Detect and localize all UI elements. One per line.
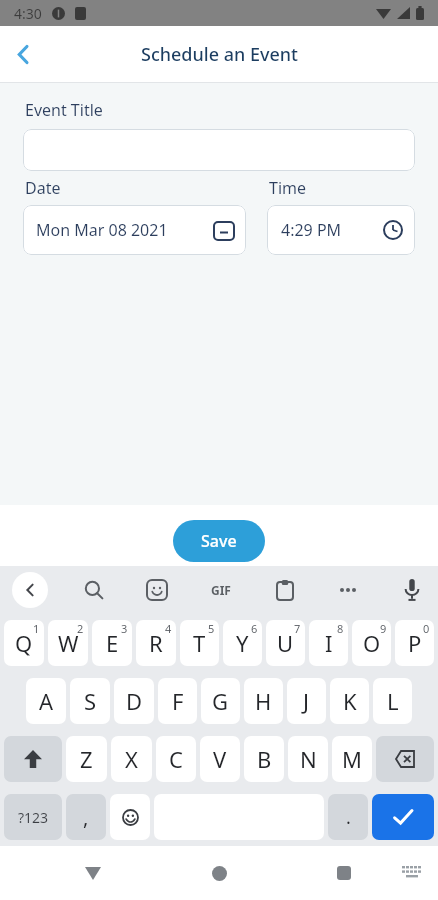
staticText: U [277,628,294,658]
staticText: W [58,628,79,658]
button[interactable]: E [92,620,132,666]
button[interactable]: Y [223,620,262,666]
staticText: Z [80,744,93,774]
button[interactable]: L [373,678,412,724]
staticText: 5 [208,621,215,636]
button[interactable]: K [330,678,369,724]
button[interactable] [4,736,62,782]
staticText: L [387,686,399,716]
staticText: A [39,686,54,716]
button[interactable]: X [111,736,152,782]
button[interactable] [330,572,366,608]
button[interactable]: H [244,678,283,724]
button[interactable] [12,572,48,608]
button[interactable]: V [200,736,240,782]
button[interactable]: A [26,678,66,724]
staticText: J [303,686,310,716]
button[interactable] [110,794,150,840]
staticText: I [325,628,333,658]
staticText: Q [15,628,33,658]
button[interactable] [376,736,434,782]
staticText: Schedule an Event [141,42,298,67]
button[interactable]: GIF [203,572,239,608]
button[interactable]: N [288,736,328,782]
staticText: GIF [211,582,231,598]
staticText: B [257,744,272,774]
staticText: 4:29 PM [281,219,342,241]
button[interactable] [5,36,41,72]
staticText: Y [236,628,249,658]
staticText: 0 [423,621,430,636]
staticText: V [213,744,227,774]
button[interactable]: G [201,678,240,724]
staticText: M [342,744,362,774]
button[interactable]: R [136,620,176,666]
staticText: 8 [337,621,344,636]
staticText: G [212,686,229,716]
button[interactable]: P [395,620,434,666]
button[interactable]: O [352,620,391,666]
staticText: 6 [251,621,258,636]
staticText: N [300,744,317,774]
staticText: 3 [121,621,128,636]
button[interactable] [267,572,303,608]
button[interactable]: , [66,794,106,840]
button[interactable] [372,794,434,840]
button[interactable] [73,853,113,893]
button[interactable]: U [266,620,305,666]
staticText: Save [201,530,237,552]
button[interactable] [394,572,430,608]
staticText: 1 [33,621,40,636]
staticText: O [363,628,381,658]
button[interactable]: Mon Mar 08 2021 [23,205,246,255]
button[interactable]: I [309,620,348,666]
button[interactable] [23,129,415,171]
staticText: , [83,804,89,831]
staticText: K [343,686,357,716]
staticText: D [126,686,143,716]
button[interactable] [139,572,175,608]
button[interactable] [398,859,426,887]
staticText: P [408,628,422,658]
staticText: Mon Mar 08 2021 [36,219,168,241]
staticText: X [125,744,138,774]
staticText: C [169,744,183,774]
staticText: S [84,686,97,716]
button[interactable]: Q [4,620,44,666]
staticText: 2 [77,621,84,636]
button[interactable]: S [70,678,110,724]
staticText: H [255,686,272,716]
staticText: Date [25,177,61,199]
button[interactable] [199,853,239,893]
staticText: 9 [380,621,387,636]
button[interactable]: F [158,678,197,724]
button[interactable]: . [328,794,368,840]
staticText: R [149,628,163,658]
button[interactable]: ?123 [4,794,62,840]
button[interactable]: T [180,620,219,666]
staticText: Event Title [25,99,103,121]
button[interactable]: Save [173,520,265,562]
button[interactable]: W [48,620,88,666]
staticText: . [346,805,351,830]
button[interactable]: J [287,678,326,724]
staticText: ?123 [18,808,49,827]
staticText: E [106,628,119,658]
button[interactable]: D [114,678,154,724]
button[interactable]: B [244,736,284,782]
staticText: T [193,628,206,658]
button[interactable]: M [332,736,372,782]
staticText: 4 [165,621,172,636]
button[interactable] [76,572,112,608]
staticText: 4:30 [14,4,42,23]
staticText: Time [269,177,307,199]
button[interactable]: Z [66,736,107,782]
staticText: 7 [294,621,301,636]
staticText: F [172,686,184,716]
button[interactable]: C [156,736,196,782]
button[interactable]: 4:29 PM [267,205,415,255]
button[interactable] [324,853,364,893]
